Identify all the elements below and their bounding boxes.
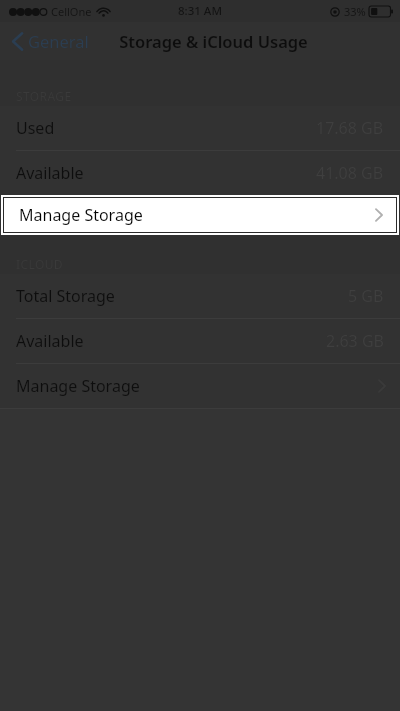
button[interactable]: Manage Storage: [0, 364, 400, 408]
staticText: General: [28, 30, 89, 52]
staticText: Available: [16, 330, 84, 352]
staticText: 33%: [344, 4, 366, 19]
staticText: Available: [16, 162, 84, 184]
staticText: 8:31 AM: [178, 3, 222, 19]
staticText: Used: [16, 117, 55, 139]
staticText: Total Storage: [16, 285, 115, 307]
staticText: CellOne: [51, 4, 92, 19]
button[interactable]: Available: [0, 319, 400, 363]
button[interactable]: Total Storage: [0, 274, 400, 318]
staticText: 5 GB: [348, 285, 384, 307]
staticText: 2.63 GB: [326, 330, 384, 352]
staticText: Manage Storage: [19, 204, 143, 226]
button[interactable]: General: [0, 24, 97, 58]
staticText: Manage Storage: [16, 375, 140, 397]
button[interactable]: Available: [0, 151, 400, 195]
button[interactable]: Manage Storage: [4, 198, 396, 232]
staticText: 41.08 GB: [316, 162, 384, 184]
staticText: Storage & iCloud Usage: [119, 30, 308, 52]
staticText: 17.68 GB: [316, 117, 384, 139]
